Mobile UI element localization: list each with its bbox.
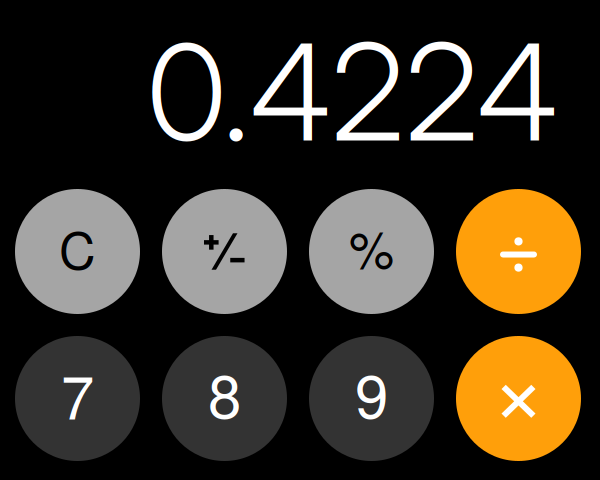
staticText: C: [59, 211, 96, 284]
button[interactable]: Multiply: [456, 336, 581, 461]
staticText: 7: [61, 350, 94, 436]
button[interactable]: Toggle sign: [162, 189, 287, 314]
staticText: 8: [208, 349, 241, 435]
button[interactable]: %: [309, 189, 434, 314]
staticText: 9: [355, 349, 388, 435]
staticText: 0.4224: [147, 11, 558, 173]
button[interactable]: 7: [15, 336, 140, 461]
staticText: %: [349, 210, 394, 283]
button[interactable]: 8: [162, 336, 287, 461]
button[interactable]: C: [15, 189, 140, 314]
button[interactable]: 9: [309, 336, 434, 461]
button[interactable]: Divide: [456, 189, 581, 314]
